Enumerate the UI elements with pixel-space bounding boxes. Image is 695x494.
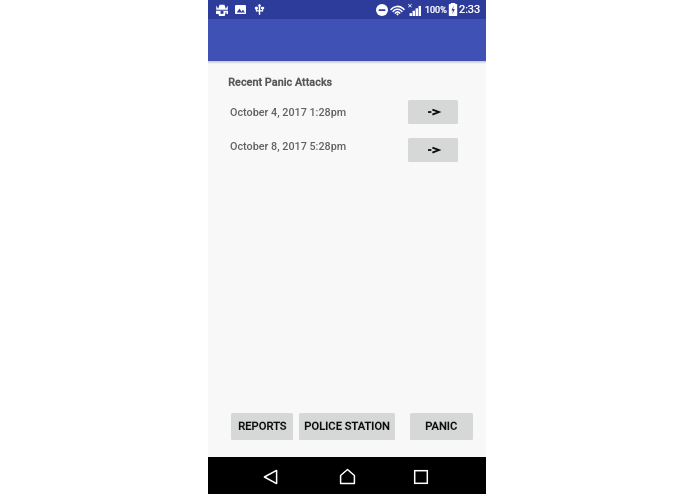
button[interactable]: Open details [408, 100, 458, 124]
button[interactable]: Recent apps [403, 458, 439, 494]
button[interactable]: PANIC [410, 413, 473, 440]
staticText: 2:33 [459, 3, 481, 16]
button[interactable]: POLICE STATION [299, 413, 395, 440]
staticText: October 4, 2017 1:28pm [230, 106, 347, 119]
button[interactable]: Open details [408, 138, 458, 162]
staticText: PANIC [425, 420, 458, 433]
button[interactable]: REPORTS [231, 413, 293, 440]
staticText: 100% [425, 5, 447, 16]
button[interactable]: Back [252, 458, 288, 494]
button[interactable]: Home [329, 458, 365, 494]
staticText: Recent Panic Attacks [228, 76, 332, 89]
staticText: REPORTS [238, 420, 287, 433]
staticText: POLICE STATION [304, 420, 390, 433]
staticText: October 8, 2017 5:28pm [230, 140, 347, 153]
